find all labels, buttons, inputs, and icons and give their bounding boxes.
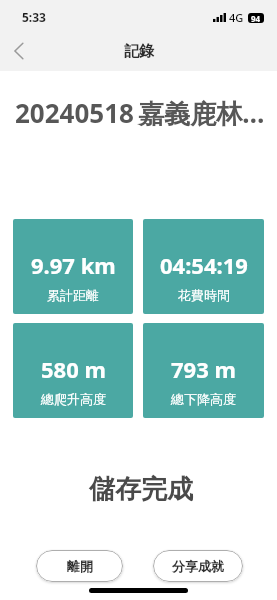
staticText: 花費時間 <box>178 287 230 303</box>
staticText: 5:33 <box>22 9 46 25</box>
button[interactable]: 分享成就 <box>153 550 243 582</box>
button[interactable]: Back <box>0 31 40 71</box>
staticText: 793 m <box>171 354 236 384</box>
staticText: 20240518 嘉義鹿林… <box>15 95 265 131</box>
staticText: 04:54:19 <box>160 250 248 280</box>
staticText: 總下降高度 <box>171 391 236 407</box>
button[interactable]: 離開 <box>36 550 123 582</box>
staticText: 94 <box>251 13 261 23</box>
staticText: 累計距離 <box>47 287 99 303</box>
staticText: 儲存完成 <box>89 473 193 506</box>
staticText: 離開 <box>67 558 93 574</box>
button[interactable]: 793 m <box>143 323 264 418</box>
button[interactable]: 580 m <box>13 323 133 418</box>
button[interactable]: 04:54:19 <box>143 219 264 314</box>
staticText: 9.97 km <box>31 250 116 280</box>
button[interactable]: 9.97 km <box>13 219 133 314</box>
staticText: 記錄 <box>124 42 154 61</box>
staticText: 總爬升高度 <box>41 391 106 407</box>
staticText: 4G <box>229 10 244 25</box>
staticText: 分享成就 <box>172 558 224 574</box>
staticText: 580 m <box>41 354 106 384</box>
